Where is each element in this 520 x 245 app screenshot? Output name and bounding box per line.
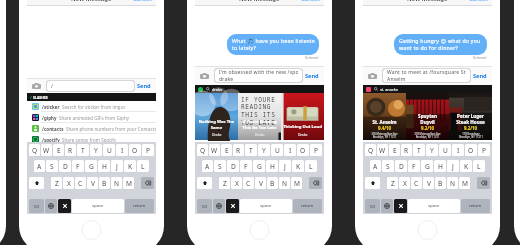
button[interactable]: X [231, 177, 242, 189]
button[interactable]: O [129, 144, 141, 156]
button[interactable]: D [395, 160, 407, 172]
button[interactable]: A [370, 160, 381, 172]
button[interactable]: Z [219, 177, 230, 189]
button[interactable]: Y [90, 144, 102, 156]
button[interactable]: F [72, 160, 84, 172]
button[interactable]: T [245, 144, 257, 156]
button[interactable]: B [267, 177, 278, 189]
button[interactable]: S [214, 160, 226, 172]
button[interactable] [29, 177, 44, 189]
button[interactable]: Camera [368, 73, 377, 79]
button[interactable]: I [284, 144, 296, 156]
button[interactable]: Nothing Was The Same [195, 93, 238, 140]
button[interactable]: F [408, 160, 420, 172]
button[interactable] [381, 199, 393, 213]
button[interactable] [309, 177, 322, 189]
button[interactable]: V [255, 177, 266, 189]
button[interactable]: /sticker [27, 101, 156, 112]
button[interactable]: return [461, 199, 490, 213]
button[interactable]: E [53, 144, 64, 156]
button[interactable]: T [413, 144, 425, 156]
button[interactable]: V [87, 177, 98, 189]
button[interactable] [213, 199, 225, 213]
button[interactable]: /contacts [27, 123, 156, 134]
button[interactable]: return [125, 199, 154, 213]
button[interactable]: J [447, 160, 459, 172]
button[interactable]: Peter Luger [449, 93, 492, 140]
button[interactable]: /spotify [27, 134, 156, 145]
button[interactable]: 123 [365, 199, 380, 213]
button[interactable]: P [142, 144, 154, 156]
button[interactable]: N [111, 177, 122, 189]
button[interactable]: H [98, 160, 110, 172]
button[interactable]: Spuyten [406, 93, 449, 140]
button[interactable]: W [209, 144, 220, 156]
button[interactable]: M [291, 177, 302, 189]
button[interactable]: I [452, 144, 464, 156]
button[interactable]: Y [258, 144, 270, 156]
button[interactable]: M [123, 177, 134, 189]
button[interactable]: I [116, 144, 128, 156]
button[interactable]: G [253, 160, 265, 172]
button[interactable]: C [411, 177, 422, 189]
button[interactable]: J [279, 160, 291, 172]
button[interactable] [45, 199, 57, 213]
button[interactable]: U [271, 144, 283, 156]
button[interactable]: Y [426, 144, 438, 156]
button[interactable]: space [240, 199, 292, 213]
button[interactable]: B [99, 177, 110, 189]
button[interactable]: P [310, 144, 322, 156]
button[interactable]: L [305, 160, 317, 172]
button[interactable]: Send [135, 82, 153, 90]
button[interactable]: T [77, 144, 89, 156]
button[interactable] [394, 199, 407, 213]
button[interactable]: C [75, 177, 86, 189]
button[interactable]: R [65, 144, 76, 156]
button[interactable]: U [103, 144, 115, 156]
button[interactable]: 123 [29, 199, 44, 213]
button[interactable]: J [111, 160, 123, 172]
button[interactable]: /giphy [27, 112, 156, 123]
button[interactable]: St. Anselm [363, 93, 406, 140]
button[interactable]: W [377, 144, 388, 156]
button[interactable]: E [389, 144, 400, 156]
button[interactable]: F [240, 160, 252, 172]
button[interactable]: Send [303, 72, 321, 80]
button[interactable]: Thinking Out Loud [281, 93, 324, 140]
button[interactable] [197, 177, 212, 189]
button[interactable]: K [460, 160, 472, 172]
button[interactable]: Z [387, 177, 398, 189]
button[interactable]: G [421, 160, 433, 172]
button[interactable]: E [221, 144, 232, 156]
button[interactable]: L [137, 160, 149, 172]
button[interactable] [477, 177, 490, 189]
button[interactable]: S [46, 160, 58, 172]
button[interactable]: space [408, 199, 460, 213]
button[interactable] [58, 199, 71, 213]
button[interactable]: L [473, 160, 485, 172]
button[interactable]: O [465, 144, 477, 156]
button[interactable]: Camera [32, 83, 41, 89]
button[interactable]: H [266, 160, 278, 172]
button[interactable]: X [399, 177, 410, 189]
button[interactable] [141, 177, 154, 189]
button[interactable]: 123 [197, 199, 212, 213]
button[interactable]: Send [471, 72, 489, 80]
button[interactable]: R [401, 144, 412, 156]
button[interactable]: V [423, 177, 434, 189]
button[interactable]: IF YOURE READING THIS ITS TOO LATE [238, 93, 281, 140]
button[interactable]: K [124, 160, 136, 172]
button[interactable]: Q [197, 144, 208, 156]
button[interactable]: return [293, 199, 322, 213]
button[interactable] [226, 199, 239, 213]
button[interactable]: A [202, 160, 213, 172]
button[interactable]: Z [51, 177, 62, 189]
button[interactable]: C [243, 177, 254, 189]
button[interactable]: Camera [200, 73, 209, 79]
button[interactable]: P [478, 144, 490, 156]
button[interactable]: Q [365, 144, 376, 156]
button[interactable]: R [233, 144, 244, 156]
button[interactable]: S [382, 160, 394, 172]
button[interactable]: A [34, 160, 45, 172]
button[interactable]: X [63, 177, 74, 189]
